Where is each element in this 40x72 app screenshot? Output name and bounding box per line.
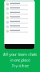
staticText: Try it free (11, 63, 28, 68)
staticText: in one place (10, 57, 30, 63)
staticText: All your team chats (3, 52, 37, 57)
